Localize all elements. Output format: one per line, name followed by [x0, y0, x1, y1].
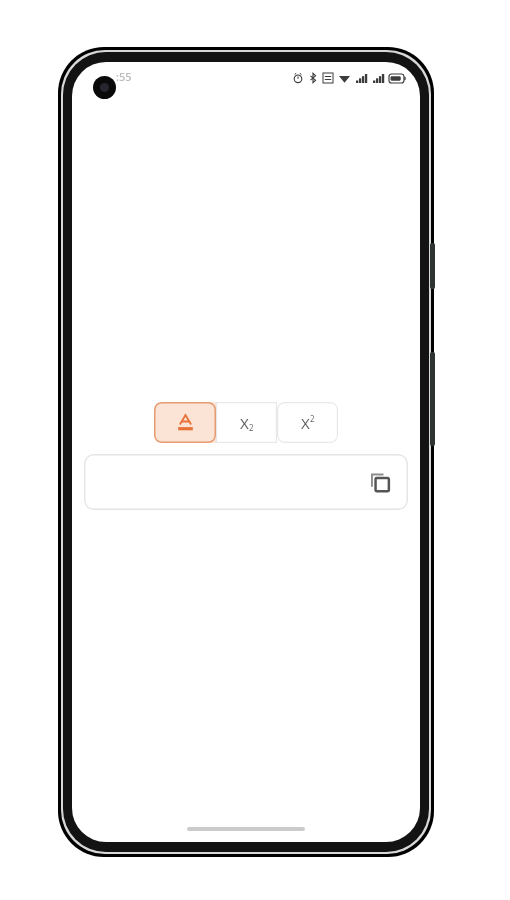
staticText: 2 [310, 413, 315, 424]
button[interactable]: Copy [365, 467, 395, 497]
staticText: 2 [249, 422, 254, 433]
button[interactable]: Text colour [154, 402, 216, 443]
staticText: X [301, 413, 310, 433]
staticText: X [240, 413, 249, 433]
button[interactable]: Superscript [277, 402, 338, 443]
staticText: :55 [116, 69, 132, 84]
button[interactable]: Copy [84, 454, 408, 510]
button[interactable]: Subscript [216, 402, 277, 443]
